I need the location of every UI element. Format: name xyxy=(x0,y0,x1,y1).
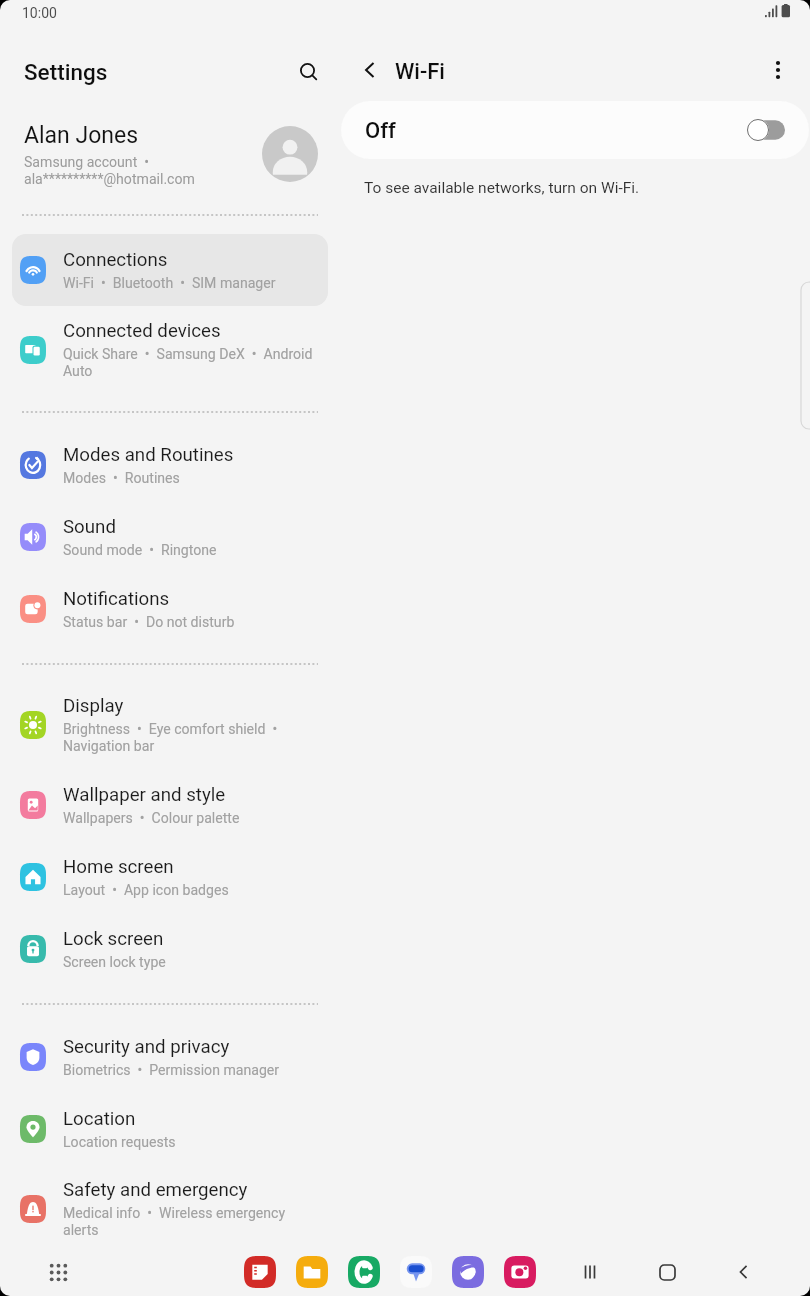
staticText: Layout • App icon badges xyxy=(63,882,229,899)
staticText: Wallpaper and style xyxy=(63,784,226,806)
staticText: Screen lock type xyxy=(63,954,166,971)
staticText: Status bar • Do not disturb xyxy=(63,614,235,631)
button[interactable]: Wallpaper and style xyxy=(12,769,328,841)
staticText: Security and privacy xyxy=(63,1036,230,1058)
button[interactable]: Camera xyxy=(504,1256,536,1288)
button[interactable]: Back xyxy=(348,48,392,92)
staticText: Home screen xyxy=(63,856,174,878)
staticText: Location requests xyxy=(63,1134,176,1151)
button[interactable]: Off xyxy=(341,101,809,159)
staticText: Notifications xyxy=(63,588,170,610)
button[interactable]: Home screen xyxy=(12,841,328,913)
button[interactable]: Home xyxy=(650,1255,684,1289)
staticText: Alan Jones xyxy=(24,122,139,149)
button[interactable]: Recent apps xyxy=(573,1255,607,1289)
staticText: Brightness • Eye comfort shield • Naviga… xyxy=(63,721,316,755)
staticText: Modes and Routines xyxy=(63,444,234,466)
button[interactable]: Sound xyxy=(12,501,328,573)
button[interactable]: Notifications xyxy=(12,573,328,645)
staticText: Off xyxy=(365,118,747,144)
button[interactable]: Samsung Notes xyxy=(244,1256,276,1288)
button[interactable]: Modes and Routines xyxy=(12,429,328,501)
staticText: Display xyxy=(63,695,124,717)
button[interactable]: Display xyxy=(12,681,328,769)
staticText: Quick Share • Samsung DeX • Android Auto xyxy=(63,346,316,380)
button[interactable]: Back xyxy=(727,1255,761,1289)
button[interactable]: Alan Jones xyxy=(0,104,340,196)
staticText: Connected devices xyxy=(63,320,221,342)
button[interactable]: Lock screen xyxy=(12,913,328,985)
staticText: Safety and emergency xyxy=(63,1179,248,1201)
staticText: Wi-Fi xyxy=(395,59,445,85)
staticText: Samsung account • ala**********@hotmail.… xyxy=(24,154,195,188)
staticText: Lock screen xyxy=(63,928,164,950)
staticText: Location xyxy=(63,1108,136,1130)
staticText: Biometrics • Permission manager xyxy=(63,1062,280,1079)
button[interactable]: Security and privacy xyxy=(12,1021,328,1093)
staticText: Modes • Routines xyxy=(63,470,180,487)
button[interactable]: Location xyxy=(12,1093,328,1165)
staticText: To see available networks, turn on Wi-Fi… xyxy=(364,179,640,197)
staticText: Connections xyxy=(63,249,168,271)
button[interactable]: Apps xyxy=(41,1255,75,1289)
staticText: Wallpapers • Colour palette xyxy=(63,810,240,827)
button[interactable]: Safety and emergency xyxy=(12,1165,328,1253)
button[interactable]: Internet xyxy=(452,1256,484,1288)
staticText: Sound mode • Ringtone xyxy=(63,542,217,559)
staticText: 10:00 xyxy=(22,5,57,21)
staticText: Settings xyxy=(24,59,108,85)
staticText: Sound xyxy=(63,516,116,538)
button[interactable]: More options xyxy=(756,48,800,92)
staticText: Medical info • Wireless emergency alerts xyxy=(63,1205,316,1239)
button[interactable]: Connections xyxy=(12,234,328,306)
button[interactable]: My Files xyxy=(296,1256,328,1288)
button[interactable]: Messages xyxy=(400,1256,432,1288)
staticText: Wi-Fi • Bluetooth • SIM manager xyxy=(63,275,276,292)
button[interactable]: Search xyxy=(288,51,330,93)
button[interactable]: Phone xyxy=(348,1256,380,1288)
button[interactable]: Connected devices xyxy=(12,306,328,394)
